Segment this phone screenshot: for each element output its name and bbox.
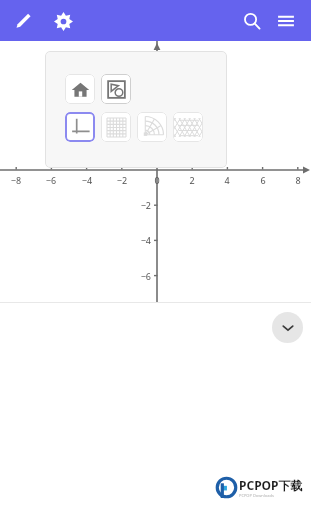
staticText: 6 [249,174,277,186]
button[interactable]: Isometric [173,112,203,142]
button[interactable]: Expand [272,312,303,343]
staticText: −4 [73,174,101,186]
staticText: 4 [213,174,241,186]
button[interactable]: Polar [137,112,167,142]
staticText: −6 [123,270,151,282]
staticText: 0 [143,174,171,186]
button[interactable]: Graphing [65,112,95,142]
button[interactable]: Edit [6,4,40,38]
staticText: PCPOP Downloads [239,493,274,498]
button[interactable]: Geometry [101,74,131,104]
button[interactable]: Grid [101,112,131,142]
button[interactable]: Menu [269,4,303,38]
staticText: −6 [37,174,65,186]
staticText: −8 [2,174,30,186]
staticText: −2 [108,174,136,186]
button[interactable]: Settings [46,4,80,38]
button[interactable]: Home [65,74,95,104]
staticText: 2 [178,174,206,186]
staticText: 8 [284,174,311,186]
button[interactable]: Search [235,4,269,38]
staticText: −4 [123,234,151,246]
staticText: PCPOP下载 [239,477,303,493]
staticText: −2 [123,199,151,211]
